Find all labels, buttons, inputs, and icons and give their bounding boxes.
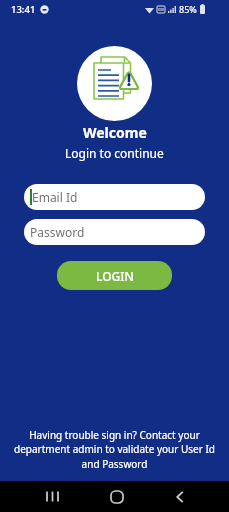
button[interactable] [32, 481, 72, 512]
button[interactable]: LOGIN [57, 261, 172, 290]
staticText: 13:41 [11, 3, 36, 16]
staticText: Email Id [32, 189, 78, 205]
staticText: Having trouble sign in? Contact your dep… [0, 428, 229, 471]
staticText: 85% [179, 3, 197, 15]
button[interactable] [97, 481, 137, 512]
staticText: LOGIN [96, 268, 134, 284]
staticText: Password [30, 224, 85, 240]
button[interactable] [160, 481, 200, 512]
staticText: Welcome [83, 123, 147, 142]
button[interactable]: Email Id [24, 184, 205, 210]
button[interactable]: Password [24, 219, 205, 245]
staticText: Login to continue [65, 145, 164, 161]
